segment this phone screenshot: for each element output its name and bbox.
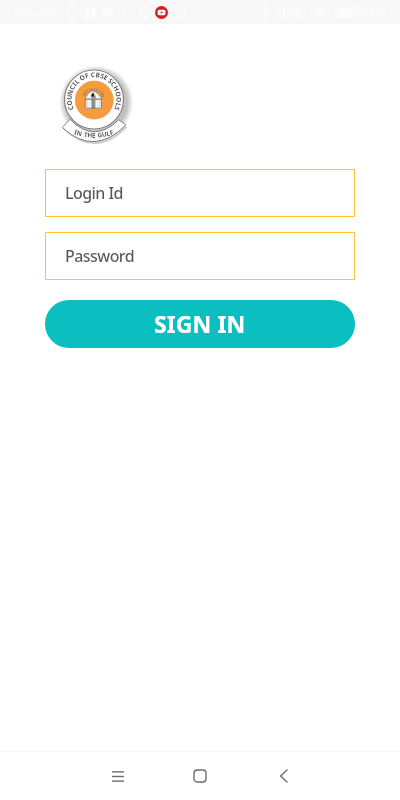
button[interactable]: Home — [176, 752, 224, 800]
staticText: SIGN IN — [154, 308, 246, 339]
staticText: Login Id — [65, 182, 123, 204]
button[interactable]: Back — [259, 752, 307, 800]
button[interactable]: Recents — [94, 752, 142, 800]
staticText: Password — [65, 245, 135, 267]
button[interactable]: Password — [45, 232, 355, 280]
button[interactable]: Login Id — [45, 169, 355, 217]
button[interactable]: SIGN IN — [45, 300, 355, 348]
